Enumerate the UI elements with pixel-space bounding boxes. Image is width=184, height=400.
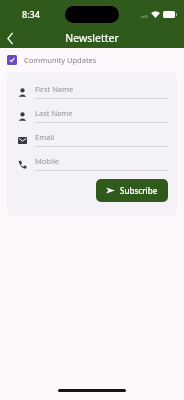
staticText: 8:34 (22, 8, 40, 20)
staticText: First Name (35, 84, 74, 94)
staticText: Last Name (35, 108, 73, 118)
staticText: Subscribe (120, 185, 158, 196)
button[interactable]: Back (0, 28, 20, 48)
button[interactable]: Email (16, 132, 168, 147)
button[interactable]: Last Name (16, 108, 168, 123)
staticText: Community Updates (24, 55, 97, 65)
button[interactable]: Mobile (16, 156, 168, 171)
button[interactable]: First Name (16, 84, 168, 99)
staticText: Mobile (35, 156, 60, 166)
staticText: Email (35, 132, 55, 142)
button[interactable]: Community Updates (7, 55, 97, 65)
staticText: Newsletter (65, 31, 119, 45)
button[interactable]: Subscribe (96, 179, 168, 202)
